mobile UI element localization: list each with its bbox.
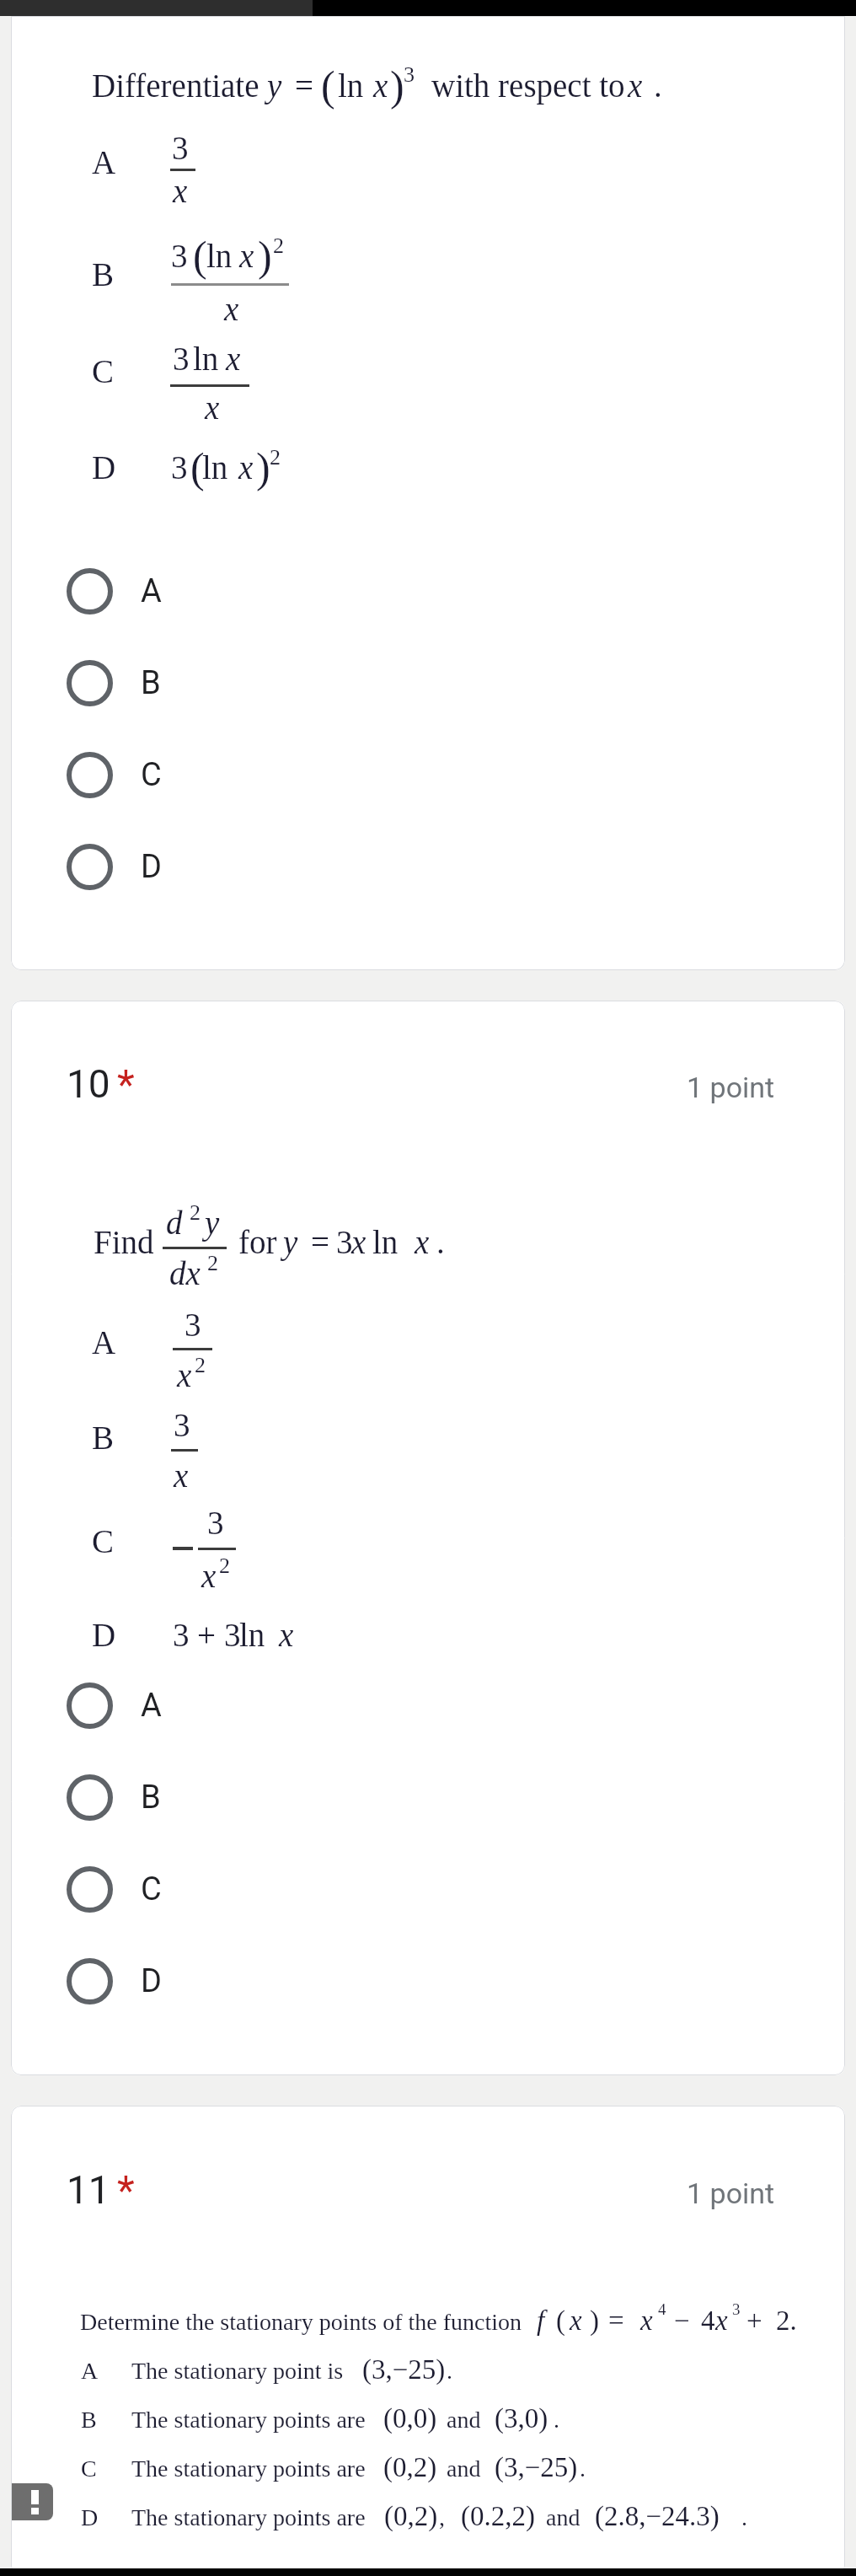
staticText: x xyxy=(201,1558,217,1594)
staticText: 4 xyxy=(701,2305,715,2337)
staticText: 1 point xyxy=(687,2176,775,2210)
staticText: ) xyxy=(258,233,272,279)
staticText: D xyxy=(92,1617,116,1653)
staticText: C xyxy=(141,1870,162,1908)
staticText: x xyxy=(174,1457,189,1494)
staticText: (3,−25) xyxy=(362,2354,446,2385)
staticText: . xyxy=(447,2358,452,2384)
staticText: The stationary points are xyxy=(131,2407,366,2433)
staticText: (0.2,2) xyxy=(461,2501,535,2532)
staticText: . xyxy=(436,1224,445,1260)
staticText: and xyxy=(546,2504,580,2530)
staticText: y xyxy=(205,1205,220,1241)
staticText: D xyxy=(141,848,162,886)
staticText: 3 xyxy=(174,1407,190,1443)
staticText: ( xyxy=(190,444,205,491)
staticText: (0,2) xyxy=(384,2501,438,2532)
staticText: B xyxy=(92,256,115,292)
staticText: and xyxy=(447,2407,481,2433)
staticText: * xyxy=(117,1060,135,1108)
staticText: 3 xyxy=(172,130,189,166)
button[interactable]: A xyxy=(11,545,845,636)
staticText: + xyxy=(197,1617,216,1653)
staticText: 3 xyxy=(336,1224,353,1260)
staticText: . xyxy=(580,2455,586,2482)
staticText: ln xyxy=(338,67,364,104)
staticText: A xyxy=(141,1687,162,1725)
button[interactable]: A xyxy=(11,1660,845,1751)
staticText: 3 xyxy=(404,62,415,87)
staticText: x xyxy=(628,67,643,104)
staticText: (2.8,−24.3) xyxy=(595,2501,720,2532)
staticText: 2 xyxy=(195,1353,206,1377)
staticText: d xyxy=(166,1205,183,1241)
staticText: x xyxy=(373,67,388,104)
staticText: ln xyxy=(372,1224,399,1260)
staticText: B xyxy=(92,1419,115,1456)
button[interactable]: C xyxy=(11,1843,845,1935)
staticText: + xyxy=(746,2305,762,2337)
staticText: A xyxy=(141,572,162,610)
staticText: 3 xyxy=(171,449,188,486)
staticText: ln xyxy=(202,449,228,486)
staticText: y xyxy=(267,67,282,104)
staticText: − xyxy=(674,2305,690,2337)
staticText: Determine the stationary points of the f… xyxy=(80,2309,522,2335)
staticText: y xyxy=(283,1224,298,1260)
staticText: . xyxy=(554,2407,559,2433)
button[interactable]: D xyxy=(11,1935,845,2026)
staticText: = xyxy=(295,67,313,104)
staticText: D xyxy=(141,1962,162,2000)
staticText: x xyxy=(173,173,188,209)
staticText: 2 xyxy=(190,1200,201,1225)
staticText: x xyxy=(415,1224,430,1260)
staticText: ln xyxy=(193,341,219,377)
staticText: C xyxy=(81,2455,97,2482)
staticText: 2 xyxy=(207,1251,218,1275)
staticText: 3 xyxy=(185,1307,201,1343)
staticText: dx xyxy=(169,1255,201,1291)
staticText: , xyxy=(439,2504,445,2530)
staticText: 10 xyxy=(67,1061,110,1107)
staticText: 4 xyxy=(658,2300,666,2318)
staticText: B xyxy=(81,2407,97,2433)
staticText: ln xyxy=(206,238,233,274)
staticText: ) xyxy=(590,2305,599,2337)
staticText: B xyxy=(141,1779,161,1817)
staticText: with respect to xyxy=(431,67,625,104)
staticText: ( xyxy=(556,2305,565,2337)
staticText: C xyxy=(141,756,162,794)
staticText: x xyxy=(226,341,241,377)
staticText: x xyxy=(570,2305,582,2337)
staticText: 2 xyxy=(219,1554,230,1578)
staticText: ( xyxy=(193,233,207,279)
staticText: 3 xyxy=(173,1617,190,1653)
staticText: x xyxy=(205,389,220,426)
button[interactable]: C xyxy=(11,729,845,820)
staticText: C xyxy=(92,353,115,389)
button[interactable]: D xyxy=(11,821,845,912)
staticText: Differentiate xyxy=(92,67,259,104)
staticText: (3,0) xyxy=(495,2403,548,2434)
staticText: and xyxy=(447,2455,481,2482)
staticText: x xyxy=(177,1357,192,1393)
other: Warning xyxy=(11,2483,53,2520)
staticText: Find xyxy=(94,1224,154,1260)
staticText: ) xyxy=(390,62,404,109)
staticText: = xyxy=(608,2305,624,2337)
staticText: A xyxy=(81,2358,99,2384)
staticText: D xyxy=(81,2504,99,2530)
staticText: 3 xyxy=(173,341,190,377)
staticText: (3,−25) xyxy=(495,2452,578,2483)
staticText: A xyxy=(92,1324,116,1360)
staticText: * xyxy=(117,2166,135,2214)
staticText: . xyxy=(654,67,662,104)
staticText: D xyxy=(92,449,116,486)
staticText: x xyxy=(224,291,239,327)
staticText: 3 xyxy=(171,238,188,274)
staticText: 2. xyxy=(776,2305,797,2337)
staticText: The stationary points are xyxy=(131,2504,366,2530)
button[interactable]: B xyxy=(11,637,845,728)
staticText: A xyxy=(92,144,116,180)
button[interactable]: B xyxy=(11,1752,845,1843)
